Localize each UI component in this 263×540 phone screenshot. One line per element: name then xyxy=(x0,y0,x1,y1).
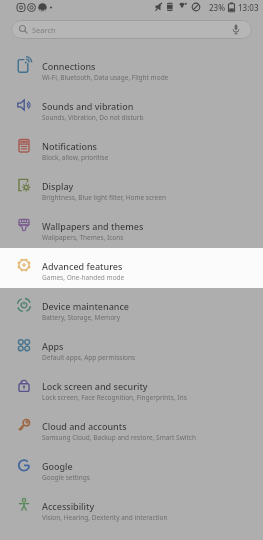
staticText: Sounds and vibration xyxy=(42,100,134,112)
staticText: Lock screen and security xyxy=(42,380,148,392)
button[interactable]: Advanced features xyxy=(0,248,263,288)
button[interactable]: Search xyxy=(11,20,252,39)
button[interactable]: Google xyxy=(0,448,263,488)
staticText: Connections xyxy=(42,60,96,72)
button[interactable]: Display xyxy=(0,168,263,208)
staticText: Battery, Storage, Memory xyxy=(42,313,121,322)
button[interactable]: Sounds and vibration xyxy=(0,88,263,128)
staticText: Brightness, Blue light filter, Home scre… xyxy=(42,193,166,202)
staticText: Block, allow, prioritise xyxy=(42,153,109,162)
staticText: Vision, Hearing, Dexterity and interacti… xyxy=(42,513,168,522)
staticText: Wallpapers, Themes, Icons xyxy=(42,233,124,242)
staticText: Advanced features xyxy=(42,260,123,272)
button[interactable]: Device maintenance xyxy=(0,288,263,328)
staticText: 13:03 xyxy=(238,2,259,13)
staticText: Google settings xyxy=(42,473,90,482)
button[interactable]: Lock screen and security xyxy=(0,368,263,408)
button[interactable]: Connections xyxy=(0,48,263,88)
staticText: Games, One-handed mode xyxy=(42,273,125,282)
staticText: Lock screen, Face Recognition, Fingerpri… xyxy=(42,393,187,402)
staticText: Cloud and accounts xyxy=(42,420,127,432)
button[interactable]: Notifications xyxy=(0,128,263,168)
staticText: 23% xyxy=(209,2,225,13)
staticText: Default apps, App permissions xyxy=(42,353,136,362)
staticText: Apps xyxy=(42,340,64,352)
button[interactable]: Accessibility xyxy=(0,488,263,528)
staticText: Sounds, Vibration, Do not disturb xyxy=(42,113,144,122)
staticText: Google xyxy=(42,460,73,472)
button[interactable]: Apps xyxy=(0,328,263,368)
staticText: Wi-Fi, Bluetooth, Data usage, Flight mod… xyxy=(42,73,169,82)
staticText: Search xyxy=(32,25,56,35)
staticText: Accessibility xyxy=(42,500,95,512)
staticText: Device maintenance xyxy=(42,300,130,312)
staticText: Display xyxy=(42,180,74,192)
staticText: Notifications xyxy=(42,140,97,152)
button[interactable]: Cloud and accounts xyxy=(0,408,263,448)
staticText: Samsung Cloud, Backup and restore, Smart… xyxy=(42,433,196,442)
staticText: Wallpapers and themes xyxy=(42,220,144,232)
button[interactable]: Wallpapers and themes xyxy=(0,208,263,248)
